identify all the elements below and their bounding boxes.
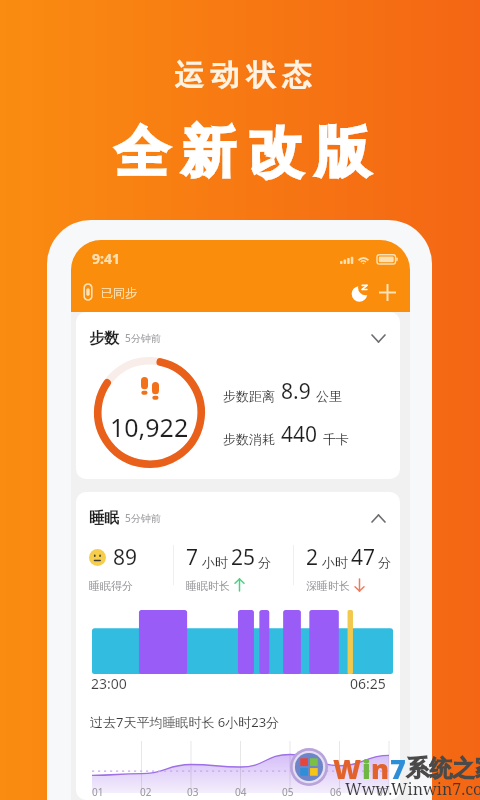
staticText: i (362, 750, 371, 787)
staticText: 07 (377, 785, 389, 799)
staticText: 06:25 (350, 674, 386, 693)
button[interactable]: Collapse (367, 507, 389, 529)
staticText: 分 (258, 554, 271, 570)
button[interactable]: 步数 (76, 312, 400, 479)
staticText: 89 (113, 543, 138, 572)
button[interactable]: Sleep mode (349, 281, 371, 303)
button[interactable]: 已同步 (82, 284, 137, 300)
staticText: 02 (140, 785, 152, 799)
staticText: 分 (378, 554, 391, 570)
staticText: 2 (306, 543, 319, 572)
staticText: 03 (187, 785, 199, 799)
staticText: 25 (231, 543, 256, 572)
staticText: n (371, 750, 390, 787)
staticText: 步数消耗 (223, 431, 275, 447)
staticText: 千卡 (323, 431, 349, 447)
staticText: 公里 (316, 388, 342, 404)
staticText: 全新改版 (108, 118, 376, 187)
staticText: 23:00 (91, 674, 127, 693)
staticText: 10,922 (110, 410, 189, 444)
staticText: Www.Winwin7.com (345, 778, 480, 800)
staticText: 5分钟前 (125, 511, 161, 525)
staticText: 步数距离 (223, 388, 275, 404)
staticText: 5分钟前 (125, 331, 161, 345)
staticText: 01 (92, 785, 104, 799)
staticText: 系统之家 (406, 754, 480, 783)
staticText: 小时 (202, 554, 228, 570)
staticText: 06 (330, 785, 342, 799)
staticText: 小时 (322, 554, 348, 570)
staticText: 9:41 (92, 249, 120, 268)
staticText: 步数 (89, 329, 119, 348)
staticText: 7 (390, 750, 406, 787)
staticText: 睡眠得分 (89, 579, 133, 591)
staticText: 47 (351, 543, 376, 572)
staticText: 440 (281, 420, 318, 449)
staticText: 04 (235, 785, 247, 799)
staticText: 睡眠 (89, 509, 119, 528)
staticText: 7 (186, 543, 199, 572)
staticText: 运动状态 (171, 57, 315, 94)
button[interactable]: 睡眠 (76, 492, 400, 800)
staticText: 05 (282, 785, 294, 799)
staticText: 过去7天平均睡眠时长 6小时23分 (90, 713, 280, 731)
staticText: 已同步 (101, 285, 137, 300)
staticText: 深睡时长 (306, 579, 350, 591)
button[interactable]: Add (376, 281, 398, 303)
button[interactable]: Expand (367, 327, 389, 349)
staticText: 8.9 (281, 377, 311, 406)
staticText: 睡眠时长 (186, 579, 230, 591)
staticText: W (333, 750, 362, 787)
